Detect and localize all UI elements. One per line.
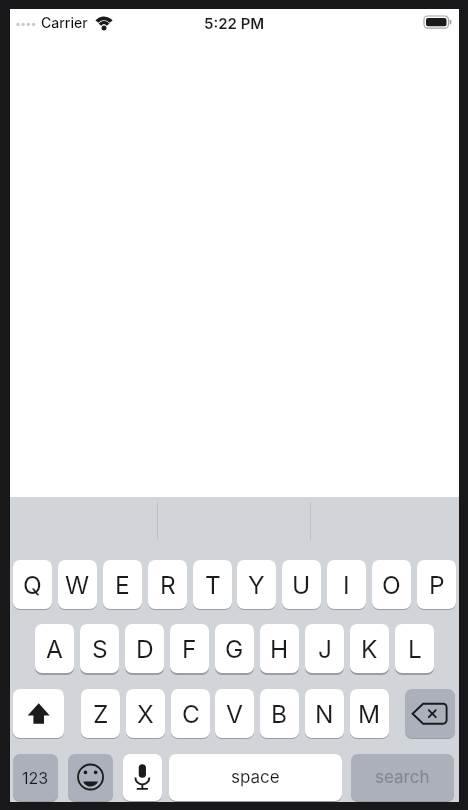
staticText: X <box>137 699 154 729</box>
button[interactable]: search <box>351 754 454 801</box>
staticText: U <box>292 570 311 600</box>
staticText: W <box>65 570 90 600</box>
staticText: C <box>182 699 200 729</box>
staticText: Z <box>93 699 109 729</box>
button[interactable]: R <box>148 560 187 609</box>
button[interactable]: P <box>417 560 456 609</box>
button[interactable]: S <box>80 624 119 673</box>
staticText: V <box>226 699 243 729</box>
button[interactable]: T <box>193 560 232 609</box>
staticText: Carrier <box>41 14 88 31</box>
staticText: R <box>160 570 176 600</box>
button[interactable]: X <box>126 689 165 738</box>
button[interactable]: Y <box>237 560 276 609</box>
staticText: K <box>361 634 378 664</box>
staticText: A <box>46 634 63 664</box>
button[interactable] <box>13 689 64 738</box>
staticText: N <box>315 699 334 729</box>
button[interactable]: F <box>170 624 209 673</box>
staticText: M <box>358 699 381 729</box>
staticText: I <box>343 570 350 600</box>
button[interactable]: M <box>350 689 389 738</box>
staticText: 123 <box>22 768 49 787</box>
staticText: space <box>231 767 280 788</box>
button[interactable]: H <box>260 624 299 673</box>
staticText: L <box>408 634 422 664</box>
staticText: P <box>429 570 445 600</box>
button[interactable]: Z <box>81 689 120 738</box>
button[interactable] <box>68 754 113 801</box>
staticText: Q <box>23 570 42 600</box>
button[interactable]: G <box>215 624 254 673</box>
button[interactable] <box>123 754 162 801</box>
button[interactable]: U <box>282 560 321 609</box>
staticText: G <box>225 634 244 664</box>
staticText: F <box>182 634 197 664</box>
button[interactable]: space <box>169 754 342 801</box>
staticText: Y <box>248 570 265 600</box>
button[interactable]: N <box>305 689 344 738</box>
button[interactable]: O <box>372 560 411 609</box>
button[interactable]: I <box>327 560 366 609</box>
staticText: T <box>205 570 221 600</box>
button[interactable]: C <box>171 689 210 738</box>
button[interactable]: J <box>305 624 344 673</box>
button[interactable]: A <box>35 624 74 673</box>
button[interactable]: B <box>260 689 299 738</box>
button[interactable]: W <box>58 560 97 609</box>
staticText: 5:22 PM <box>204 14 265 32</box>
button[interactable]: V <box>215 689 254 738</box>
staticText: J <box>318 634 332 664</box>
staticText: D <box>136 634 154 664</box>
button[interactable] <box>405 689 455 738</box>
staticText: E <box>115 570 130 600</box>
button[interactable]: L <box>395 624 434 673</box>
staticText: S <box>92 634 108 664</box>
button[interactable]: D <box>125 624 164 673</box>
button[interactable]: K <box>350 624 389 673</box>
staticText: O <box>382 570 401 600</box>
staticText: search <box>375 767 430 788</box>
button[interactable]: Q <box>13 560 52 609</box>
button[interactable]: E <box>103 560 142 609</box>
staticText: B <box>271 699 288 729</box>
staticText: H <box>270 634 289 664</box>
button[interactable]: 123 <box>13 754 58 801</box>
